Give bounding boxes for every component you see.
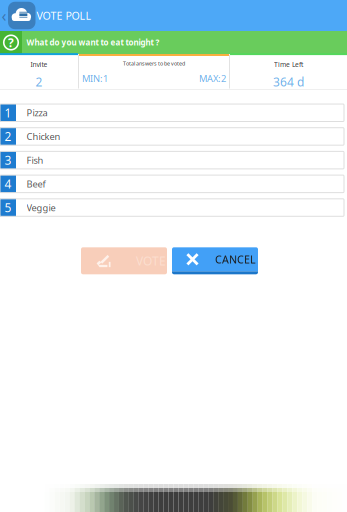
button[interactable]: 2 [0, 128, 344, 145]
staticText: MIN:1 [82, 72, 108, 84]
staticText: 4 [4, 176, 11, 192]
button[interactable]: 4 [0, 175, 344, 193]
staticText: 5 [4, 200, 11, 215]
button[interactable]: CANCEL [172, 247, 258, 274]
staticText: 2 [4, 128, 11, 144]
staticText: 364 d [273, 74, 304, 90]
staticText: VOTE [136, 253, 166, 269]
staticText: MAX:2 [199, 72, 226, 84]
button[interactable]: VOTE [81, 247, 167, 274]
staticText: Chicken [26, 130, 60, 143]
staticText: VOTE POLL [36, 8, 91, 23]
staticText: Beef [26, 178, 45, 190]
staticText: ? [8, 34, 14, 50]
button[interactable]: 1 [0, 104, 344, 121]
staticText: ‹ [1, 5, 6, 26]
button[interactable]: 5 [0, 199, 344, 216]
staticText: Fish [26, 154, 43, 166]
staticText: Total answers to be voted [123, 60, 185, 67]
staticText: Veggie [26, 201, 55, 214]
staticText: 3 [4, 152, 11, 168]
button[interactable]: 3 [0, 151, 344, 169]
staticText: What do you want to eat tonight ? [26, 37, 159, 48]
staticText: Pizza [26, 107, 47, 119]
staticText: CANCEL [215, 252, 256, 266]
staticText: Time Left [274, 60, 303, 69]
staticText: Invite [30, 60, 47, 69]
staticText: 1 [4, 105, 11, 121]
button[interactable]: Back [0, 0, 8, 31]
staticText: 2 [35, 74, 42, 90]
